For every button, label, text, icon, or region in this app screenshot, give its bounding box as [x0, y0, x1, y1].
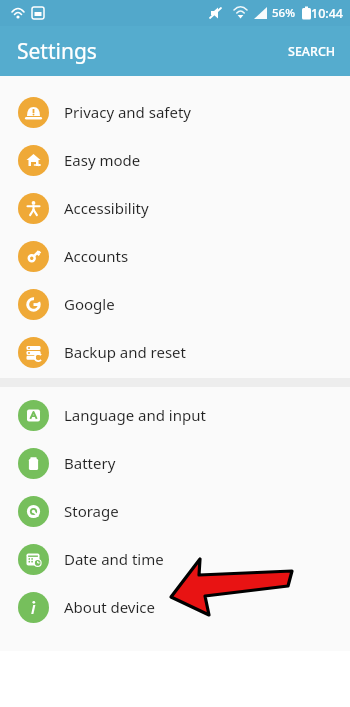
staticText: About device	[64, 597, 156, 617]
button[interactable]: Battery	[0, 439, 350, 487]
staticText: SEARCH	[288, 43, 336, 60]
staticText: Battery	[64, 453, 116, 473]
staticText: Backup and reset	[64, 342, 186, 362]
button[interactable]: Accounts	[0, 232, 350, 280]
staticText: Google	[64, 294, 115, 314]
staticText: Easy mode	[64, 150, 141, 170]
staticText: Privacy and safety	[64, 102, 192, 122]
staticText: Settings	[17, 37, 97, 66]
staticText: Language and input	[64, 405, 206, 425]
button[interactable]: Backup and reset	[0, 328, 350, 376]
button[interactable]: Date and time	[0, 535, 350, 583]
button[interactable]: Storage	[0, 487, 350, 535]
staticText: Accessibility	[64, 198, 149, 218]
button[interactable]: Privacy and safety	[0, 88, 350, 136]
button[interactable]: Language and input	[0, 391, 350, 439]
staticText: Storage	[64, 501, 119, 521]
staticText: Accounts	[64, 246, 129, 266]
staticText: Date and time	[64, 549, 164, 569]
button[interactable]: About device	[0, 583, 350, 631]
button[interactable]: Google	[0, 280, 350, 328]
staticText: 56%	[272, 5, 295, 21]
button[interactable]: Easy mode	[0, 136, 350, 184]
button[interactable]: Accessibility	[0, 184, 350, 232]
staticText: 10:44	[311, 5, 344, 22]
button[interactable]: SEARCH	[274, 33, 350, 70]
